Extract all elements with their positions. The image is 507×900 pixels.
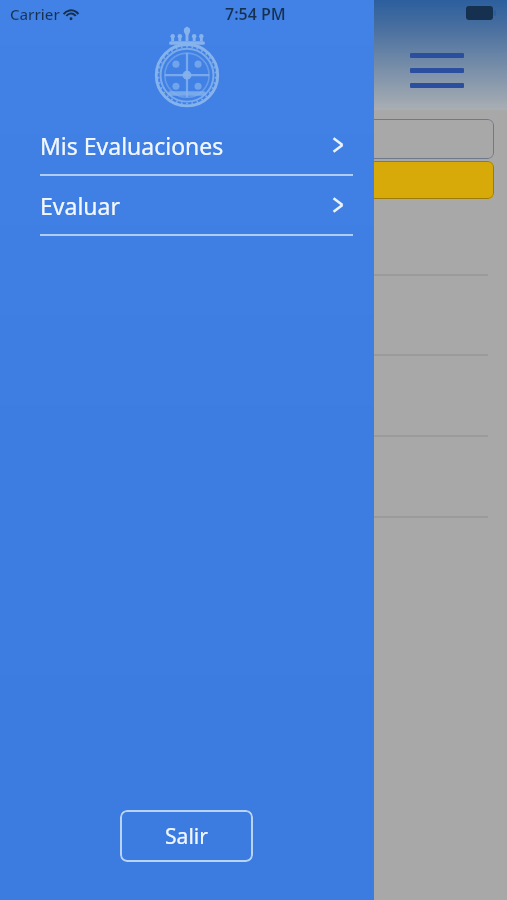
- button[interactable]: Menu: [408, 46, 464, 88]
- staticText: Recibidas: [264, 169, 342, 192]
- button[interactable]: Recibidas: [250, 161, 494, 199]
- staticText: 7:54 PM: [225, 3, 286, 25]
- button[interactable]: Salir: [120, 810, 253, 862]
- staticText: Carrier: [10, 4, 60, 24]
- staticText: Mis Evaluaciones: [40, 130, 224, 161]
- staticText: Evaluar: [40, 190, 120, 221]
- staticText: Salir: [165, 822, 208, 851]
- button[interactable]: Evaluar: [250, 119, 494, 159]
- button[interactable]: Evaluar: [0, 176, 374, 234]
- button[interactable]: Mis Evaluaciones: [0, 116, 374, 174]
